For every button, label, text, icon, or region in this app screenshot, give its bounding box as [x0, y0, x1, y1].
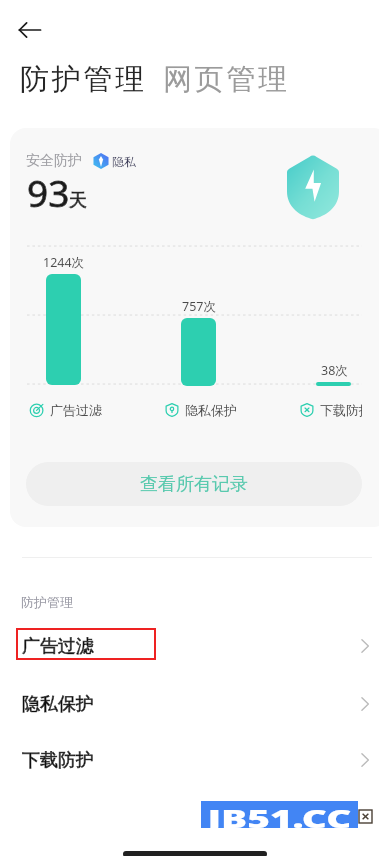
staticText: 隐私保护	[22, 693, 94, 716]
staticText: 93	[27, 167, 70, 217]
button[interactable]: 隐私保护	[0, 675, 379, 733]
staticText: 93	[27, 167, 70, 217]
button[interactable]: Back	[12, 12, 48, 48]
staticText: 天	[69, 189, 87, 212]
staticText: 天	[69, 189, 87, 212]
button[interactable]: 下载防护	[0, 731, 379, 789]
button[interactable]: Close ad	[359, 810, 372, 823]
staticText: 隐私保护	[185, 402, 237, 418]
staticText: JB51.CC	[207, 801, 352, 828]
staticText: 隐私	[112, 154, 136, 169]
staticText: 1244次	[43, 254, 85, 271]
button[interactable]: 防护管理	[20, 61, 147, 98]
button[interactable]: 广告过滤	[0, 617, 379, 675]
staticText: 网页管理	[163, 61, 290, 98]
staticText: 广告过滤	[22, 635, 94, 658]
button[interactable]: 查看所有记录	[26, 462, 362, 506]
staticText: 广告过滤	[50, 402, 102, 418]
button[interactable]: 隐私保护	[165, 402, 237, 418]
staticText: 防护管理	[20, 61, 147, 98]
staticText: 隐私保护	[22, 693, 94, 716]
staticText: 下载防护	[22, 749, 94, 772]
button[interactable]: 网页管理	[163, 61, 290, 98]
staticText: 防护管理	[21, 594, 73, 610]
staticText: 安全防护	[26, 152, 82, 170]
staticText: 757次	[182, 298, 216, 315]
staticText: 查看所有记录	[140, 473, 248, 496]
staticText: 下载防护	[22, 749, 94, 772]
staticText: 广告过滤	[22, 635, 94, 658]
staticText: 38次	[321, 362, 348, 379]
button[interactable]: 下载防护	[300, 402, 362, 418]
button[interactable]: 广告过滤	[30, 402, 102, 418]
staticText: 下载防护	[320, 402, 362, 418]
